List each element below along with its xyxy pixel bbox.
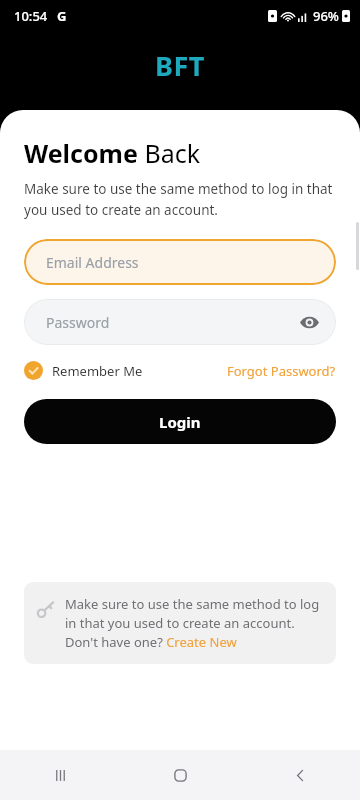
button[interactable]: Show password (294, 307, 324, 337)
staticText: Make sure to use the same method to log … (24, 180, 336, 219)
staticText: Welcome Back (24, 136, 201, 170)
button[interactable]: Forgot Password? (227, 362, 336, 380)
button[interactable]: Back (240, 750, 360, 800)
staticText: Email Address (46, 253, 139, 272)
staticText: Password (46, 313, 110, 332)
button[interactable]: Password (24, 299, 336, 345)
staticText: Forgot Password? (227, 362, 336, 380)
button[interactable]: Login (24, 399, 336, 444)
staticText: Login (159, 412, 201, 432)
staticText: 10:54 (14, 7, 48, 25)
staticText: G (57, 7, 67, 25)
button[interactable]: Home (120, 750, 240, 800)
button[interactable]: Recent apps (0, 750, 120, 800)
button[interactable]: Remember Me (24, 361, 143, 380)
button[interactable]: Make sure to use the same method to log … (24, 582, 336, 664)
staticText: BFT (155, 47, 205, 84)
button[interactable]: Email Address (24, 239, 336, 285)
staticText: 96% (313, 7, 339, 25)
staticText: Make sure to use the same method to log … (65, 595, 323, 651)
staticText: Remember Me (52, 362, 143, 380)
